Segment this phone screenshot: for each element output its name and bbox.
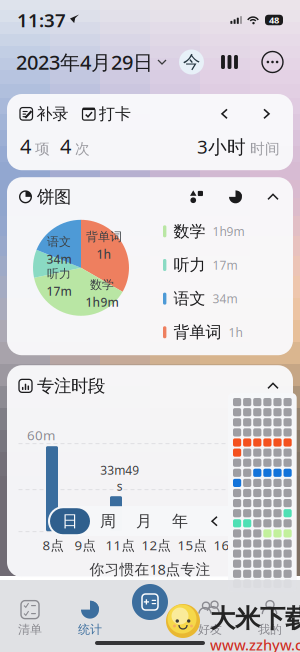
staticText: 48 <box>269 14 279 26</box>
button[interactable]: Pie chart <box>226 187 245 206</box>
button[interactable]: 今 <box>179 49 204 74</box>
staticText: 17m <box>212 257 237 273</box>
button[interactable]: 月 <box>126 508 162 534</box>
staticText: 背单词 <box>173 322 221 342</box>
staticText: 背单词 <box>86 229 122 244</box>
staticText: 听力 <box>47 266 71 281</box>
button[interactable]: Columns view <box>217 49 242 74</box>
staticText: 专注时段 <box>32 375 105 396</box>
staticText: 你习惯在18点专注 <box>89 559 210 579</box>
button[interactable]: Next range <box>239 513 252 530</box>
button[interactable]: 统计 <box>60 598 120 639</box>
staticText: 17m <box>46 283 71 299</box>
staticText: 项 <box>31 140 50 158</box>
button[interactable]: 好友 <box>180 598 240 639</box>
staticText: 时间 <box>246 140 280 158</box>
staticText: 大米下载站 <box>210 603 300 634</box>
staticText: 4 <box>50 133 71 159</box>
button[interactable]: 补录 <box>20 104 68 124</box>
staticText: 3小时 <box>197 134 246 159</box>
button[interactable]: 周 <box>90 508 126 534</box>
staticText: 次 <box>71 140 90 158</box>
staticText: 1h9m <box>85 294 118 310</box>
staticText: 月 <box>136 511 152 531</box>
button[interactable]: Categories <box>187 187 206 206</box>
staticText: 15点 <box>177 536 206 554</box>
staticText: 今 <box>183 51 200 73</box>
staticText: 听力 <box>173 255 205 275</box>
staticText: 8点 <box>42 536 63 554</box>
button[interactable]: 年 <box>162 508 198 534</box>
staticText: 1h9m <box>212 223 244 239</box>
button[interactable]: 我的 <box>240 598 300 639</box>
staticText: 清单 <box>18 622 42 637</box>
staticText: 2023年4月29日 <box>16 49 153 75</box>
button[interactable]: 2023年4月29日 <box>16 44 166 80</box>
staticText: 34m <box>212 291 237 307</box>
staticText: www.zzhyw.com <box>210 635 300 652</box>
staticText: 11点 <box>105 536 134 554</box>
staticText: 16点 <box>213 536 242 554</box>
button[interactable]: Collapse <box>265 191 281 202</box>
staticText: 好友 <box>198 622 222 637</box>
button[interactable]: 清单 <box>0 598 60 639</box>
button[interactable]: 日 <box>50 508 90 534</box>
staticText: 数学 <box>90 277 114 292</box>
staticText: 1h <box>228 324 242 340</box>
staticText: 年 <box>172 511 188 531</box>
staticText: 12点 <box>141 536 170 554</box>
staticText: 统计 <box>78 622 102 637</box>
staticText: 11:37 <box>17 8 66 32</box>
staticText: 数学 <box>173 221 205 241</box>
button[interactable]: Collapse <box>265 380 281 391</box>
staticText: 补录 <box>36 104 68 124</box>
staticText: 打卡 <box>99 104 131 124</box>
button[interactable]: Add entry <box>132 584 168 620</box>
staticText: 60m <box>27 426 55 444</box>
button[interactable]: Previous day <box>217 104 232 123</box>
button[interactable]: 打卡 <box>82 104 131 124</box>
staticText: 9点 <box>74 536 95 554</box>
staticText: 34m <box>46 251 71 267</box>
staticText: 语文 <box>47 234 71 249</box>
staticText: 日 <box>62 511 78 531</box>
button[interactable]: Previous range <box>208 513 221 530</box>
staticText: 14m10 <box>235 480 279 498</box>
staticText: 33m49 s <box>100 462 139 494</box>
staticText: 我的 <box>258 622 282 637</box>
staticText: 4 <box>20 133 31 159</box>
staticText: 1h <box>96 246 111 262</box>
staticText: 饼图 <box>32 186 71 207</box>
button[interactable]: More <box>260 49 285 74</box>
button[interactable]: Next day <box>259 104 274 123</box>
staticText: 周 <box>100 511 116 531</box>
staticText: 语文 <box>173 289 205 308</box>
